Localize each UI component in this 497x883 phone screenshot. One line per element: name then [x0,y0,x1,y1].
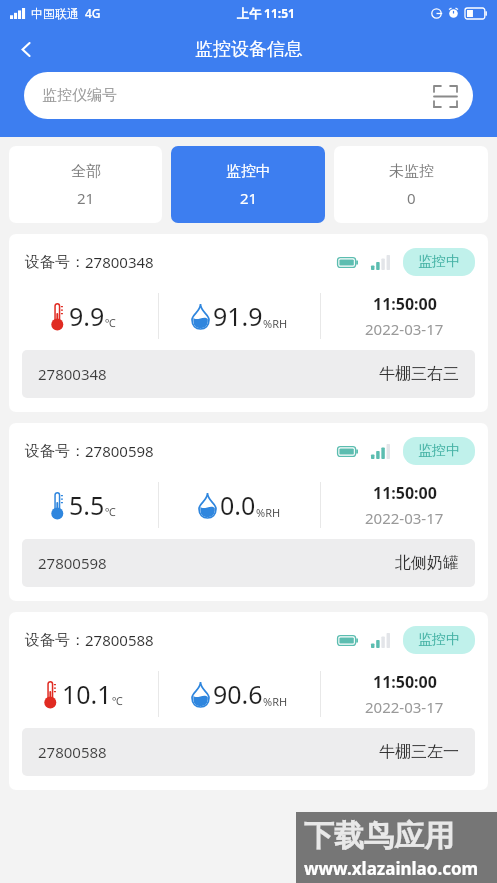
staticText: 2022-03-17 [365,319,444,339]
staticText: 21 [240,188,258,208]
staticText: 27800598 [38,553,107,573]
button[interactable]: 未监控 [334,146,488,223]
staticText: 监控中 [418,253,460,271]
button[interactable]: 27800588 [22,728,475,776]
button[interactable]: 监控中 [418,631,460,649]
staticText: 11:50:00 [373,293,437,315]
staticText: 下载鸟应用 [304,817,454,855]
button[interactable]: 设备号： [9,234,488,412]
button[interactable]: 监控中 [418,442,460,460]
staticText: 2022-03-17 [365,508,444,528]
staticText: ℃ [112,693,123,708]
staticText: 10.1 [62,677,112,711]
staticText: 2022-03-17 [365,697,444,717]
staticText: 27800588 [38,742,107,762]
button[interactable]: Back [6,29,46,69]
staticText: 11:50:00 [373,482,437,504]
staticText: %RH [263,316,288,331]
staticText: %RH [256,505,281,520]
staticText: 0.0 [220,488,256,522]
staticText: ℃ [105,504,116,519]
staticText: 监控仪编号 [42,86,117,105]
staticText: 设备号： [25,631,85,650]
staticText: 5.5 [69,488,105,522]
staticText: ℃ [105,315,116,330]
button[interactable]: 监控中 [171,146,325,223]
button[interactable]: 27800598 [22,539,475,587]
staticText: 北侧奶罐 [395,553,459,573]
button[interactable]: 设备号： [9,612,488,790]
staticText: 上午 11:51 [237,5,295,21]
button[interactable]: Scan code [431,82,459,110]
staticText: 设备号： [25,253,85,272]
staticText: 0 [407,188,416,208]
button[interactable]: 监控仪编号 [24,72,473,119]
staticText: 9.9 [69,299,105,333]
button[interactable]: 监控中 [418,253,460,271]
button[interactable]: 27800348 [22,350,475,398]
staticText: 27800588 [85,630,154,650]
staticText: 监控设备信息 [195,38,303,61]
staticText: 监控中 [418,442,460,460]
button[interactable]: 全部 [9,146,162,223]
staticText: 27800348 [85,252,154,272]
staticText: 90.6 [213,677,263,711]
staticText: 牛棚三左一 [379,742,459,762]
staticText: 设备号： [25,442,85,461]
staticText: 21 [77,188,95,208]
staticText: %RH [263,694,288,709]
staticText: 中国联通 [31,6,79,21]
staticText: 91.9 [213,299,263,333]
staticText: 11:50:00 [373,671,437,693]
button[interactable]: 设备号： [9,423,488,601]
staticText: 未监控 [389,162,434,181]
staticText: 全部 [71,162,101,181]
staticText: 4G [85,5,101,21]
staticText: 27800348 [38,364,107,384]
staticText: www.xlazainlao.com [304,857,479,878]
staticText: 监控中 [418,631,460,649]
staticText: 监控中 [226,162,271,181]
staticText: 27800598 [85,441,154,461]
staticText: 牛棚三右三 [379,364,459,384]
